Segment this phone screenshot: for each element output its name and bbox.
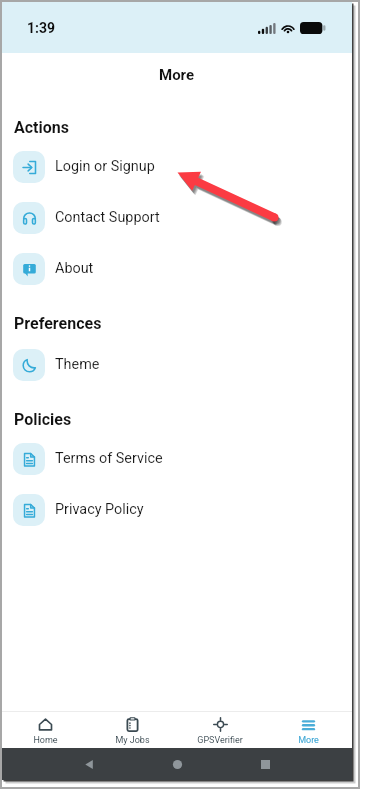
staticText: More (298, 735, 319, 746)
staticText: Actions (14, 118, 69, 137)
staticText: About (55, 260, 94, 277)
staticText: Theme (55, 356, 100, 373)
staticText: Policies (14, 410, 72, 429)
staticText: Terms of Service (55, 450, 163, 467)
staticText: GPSVerifier (197, 735, 243, 746)
button[interactable]: Login or Signup (2, 141, 352, 192)
button[interactable]: About (2, 243, 352, 294)
button[interactable]: Recent apps (254, 753, 276, 775)
staticText: Preferences (14, 314, 102, 333)
button[interactable]: Home (2, 712, 89, 748)
staticText: More (159, 66, 195, 84)
staticText: Home (33, 735, 58, 746)
button[interactable]: More (264, 712, 352, 748)
staticText: Privacy Policy (55, 501, 144, 518)
button[interactable]: Home (166, 753, 188, 775)
button[interactable]: Contact Support (2, 192, 352, 243)
button[interactable]: Privacy Policy (2, 484, 352, 535)
button[interactable]: Back (78, 753, 100, 775)
staticText: My Jobs (115, 735, 150, 746)
button[interactable]: Terms of Service (2, 433, 352, 484)
staticText: Login or Signup (55, 158, 155, 175)
button[interactable]: GPSVerifier (176, 712, 264, 748)
staticText: Contact Support (55, 209, 160, 226)
button[interactable]: Theme (2, 339, 352, 390)
button[interactable]: My Jobs (89, 712, 176, 748)
staticText: 1:39 (27, 20, 56, 36)
